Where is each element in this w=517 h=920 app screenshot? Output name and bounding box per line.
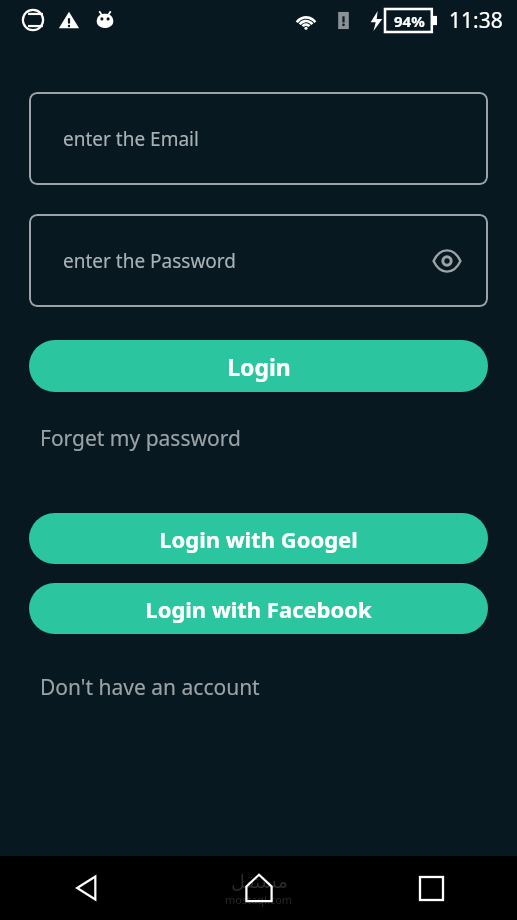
staticText: mostaql.com — [225, 892, 293, 907]
button[interactable]: enter the Password — [29, 214, 488, 307]
staticText: مستقل — [231, 870, 288, 892]
button[interactable]: Login with Facebook — [29, 583, 488, 634]
button[interactable]: Don't have an account — [40, 673, 260, 702]
staticText: enter the Password — [63, 248, 237, 274]
staticText: enter the Email — [63, 126, 199, 152]
staticText: Login with Googel — [159, 524, 358, 554]
button[interactable]: Home — [173, 856, 345, 920]
button[interactable]: Back — [0, 856, 173, 920]
staticText: 94% — [394, 11, 425, 31]
button[interactable]: Login — [29, 340, 488, 392]
button[interactable]: Forget my password — [40, 424, 241, 453]
staticText: Login — [227, 351, 291, 382]
button[interactable]: Recents — [345, 856, 517, 920]
button[interactable]: Show password — [429, 243, 465, 279]
button[interactable]: Login with Googel — [29, 513, 488, 564]
staticText: 11:38 — [449, 6, 503, 35]
button[interactable]: enter the Email — [29, 92, 488, 185]
staticText: Login with Facebook — [145, 594, 372, 624]
